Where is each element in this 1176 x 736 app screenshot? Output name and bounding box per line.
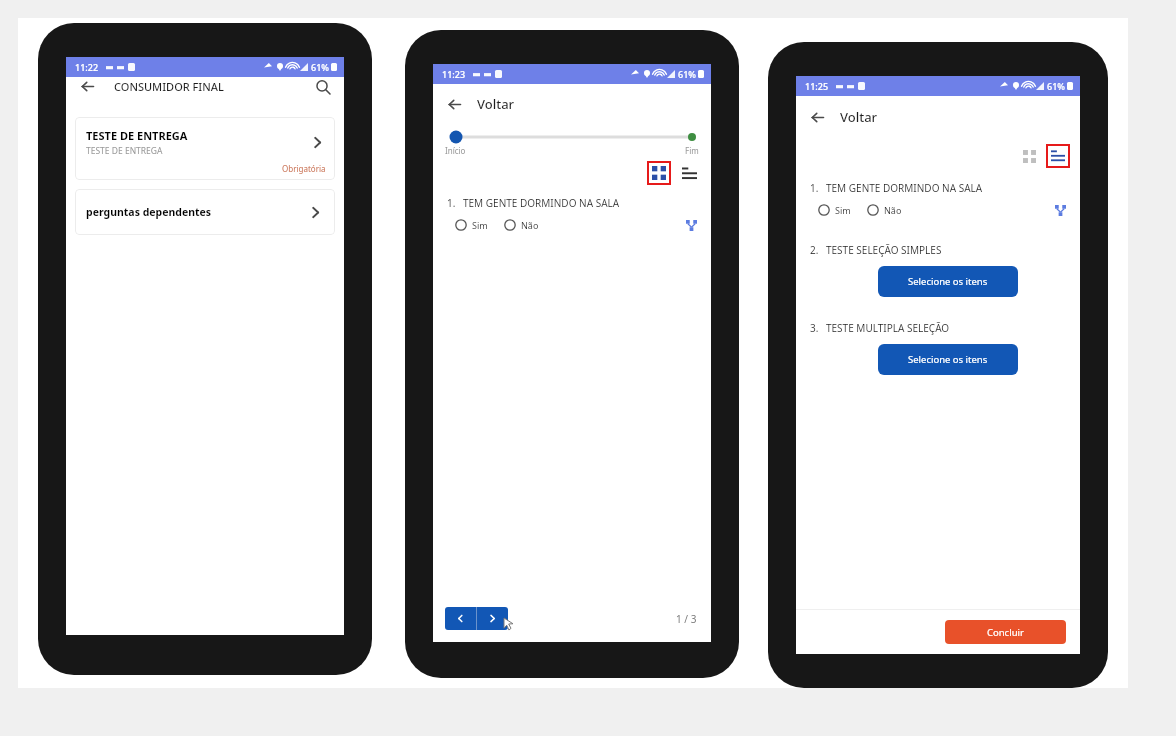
other: Grid view <box>1023 150 1036 163</box>
staticText: Fim <box>685 145 699 156</box>
button[interactable]: Selecione os itens <box>878 266 1018 297</box>
staticText: TESTE DE ENTREGA <box>86 145 163 157</box>
button[interactable]: Next <box>477 607 508 630</box>
button[interactable]: Sim <box>818 204 851 216</box>
button[interactable]: Previous <box>445 607 476 630</box>
staticText: TESTE MULTIPLA SELEÇÃO <box>826 321 950 335</box>
staticText: 11:23 <box>442 68 466 80</box>
staticText: 1. <box>810 181 819 195</box>
other: Dependencies <box>686 220 697 231</box>
staticText: Selecione os itens <box>908 275 988 288</box>
staticText: TEM GENTE DORMINDO NA SALA <box>463 196 620 210</box>
staticText: 11:25 <box>805 80 829 92</box>
staticText: Voltar <box>477 95 515 113</box>
button[interactable]: Concluir <box>945 620 1066 644</box>
other: Back <box>810 110 825 125</box>
staticText: Não <box>884 204 902 216</box>
other: Grid view <box>652 166 666 180</box>
staticText: 11:22 <box>75 61 99 73</box>
button[interactable]: Grid view <box>647 161 671 185</box>
button[interactable]: Dependencies <box>686 220 697 231</box>
other: Back <box>447 97 462 112</box>
button[interactable]: TESTE DE ENTREGA <box>75 117 335 180</box>
button[interactable]: Dependencies <box>1055 205 1066 216</box>
button[interactable]: List view <box>680 164 699 183</box>
staticText: Obrigatória <box>282 163 326 174</box>
staticText: 1. <box>447 196 456 210</box>
staticText: Início <box>445 145 466 156</box>
staticText: Sim <box>472 219 488 231</box>
other: List view <box>1051 149 1065 163</box>
button[interactable]: perguntas dependentes <box>75 189 335 235</box>
staticText: 61% <box>311 61 329 73</box>
button[interactable]: List view <box>1046 144 1070 168</box>
button[interactable]: Back <box>445 95 464 114</box>
button[interactable]: Search <box>314 78 332 96</box>
button[interactable]: Back <box>78 77 97 96</box>
staticText: 1 / 3 <box>676 612 697 626</box>
staticText: 2. <box>810 243 819 257</box>
staticText: TEM GENTE DORMINDO NA SALA <box>826 181 983 195</box>
staticText: perguntas dependentes <box>86 205 307 219</box>
staticText: 61% <box>1047 80 1065 92</box>
button[interactable]: Não <box>504 219 539 231</box>
staticText: CONSUMIDOR FINAL <box>114 79 224 94</box>
staticText: 3. <box>810 321 819 335</box>
staticText: Não <box>521 219 539 231</box>
staticText: TESTE SELEÇÃO SIMPLES <box>826 243 942 257</box>
button[interactable]: Selecione os itens <box>878 344 1018 375</box>
button[interactable]: Não <box>867 204 902 216</box>
other: Back <box>80 79 95 94</box>
staticText: Concluir <box>987 626 1024 639</box>
staticText: 61% <box>678 68 696 80</box>
staticText: Sim <box>835 204 851 216</box>
other: Dependencies <box>1055 205 1066 216</box>
staticText: Selecione os itens <box>908 353 988 366</box>
staticText: TESTE DE ENTREGA <box>86 128 188 143</box>
button[interactable]: Sim <box>455 219 488 231</box>
staticText: Voltar <box>840 108 878 126</box>
other: List view <box>682 166 697 181</box>
button[interactable]: Back <box>808 108 827 127</box>
button[interactable]: Grid view <box>1020 147 1039 166</box>
